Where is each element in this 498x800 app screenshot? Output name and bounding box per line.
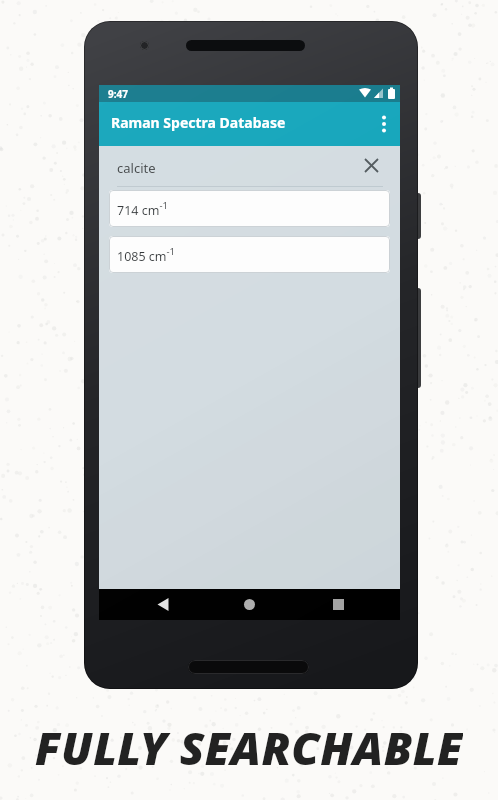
staticText: FULLY SEARCHABLE [35,717,463,769]
button[interactable]: 1085 cm-1 [109,236,390,273]
staticText: 714 cm-1 [117,199,168,219]
button[interactable] [356,151,386,179]
button[interactable] [368,102,400,146]
staticText: Raman Spectra Database [111,113,286,132]
button[interactable] [322,589,354,620]
button[interactable] [147,589,179,620]
staticText: calcite [117,159,156,177]
staticText: 9:47 [108,87,128,101]
staticText: 1085 cm-1 [117,245,176,265]
button[interactable] [234,589,265,620]
button[interactable]: 714 cm-1 [109,190,390,227]
